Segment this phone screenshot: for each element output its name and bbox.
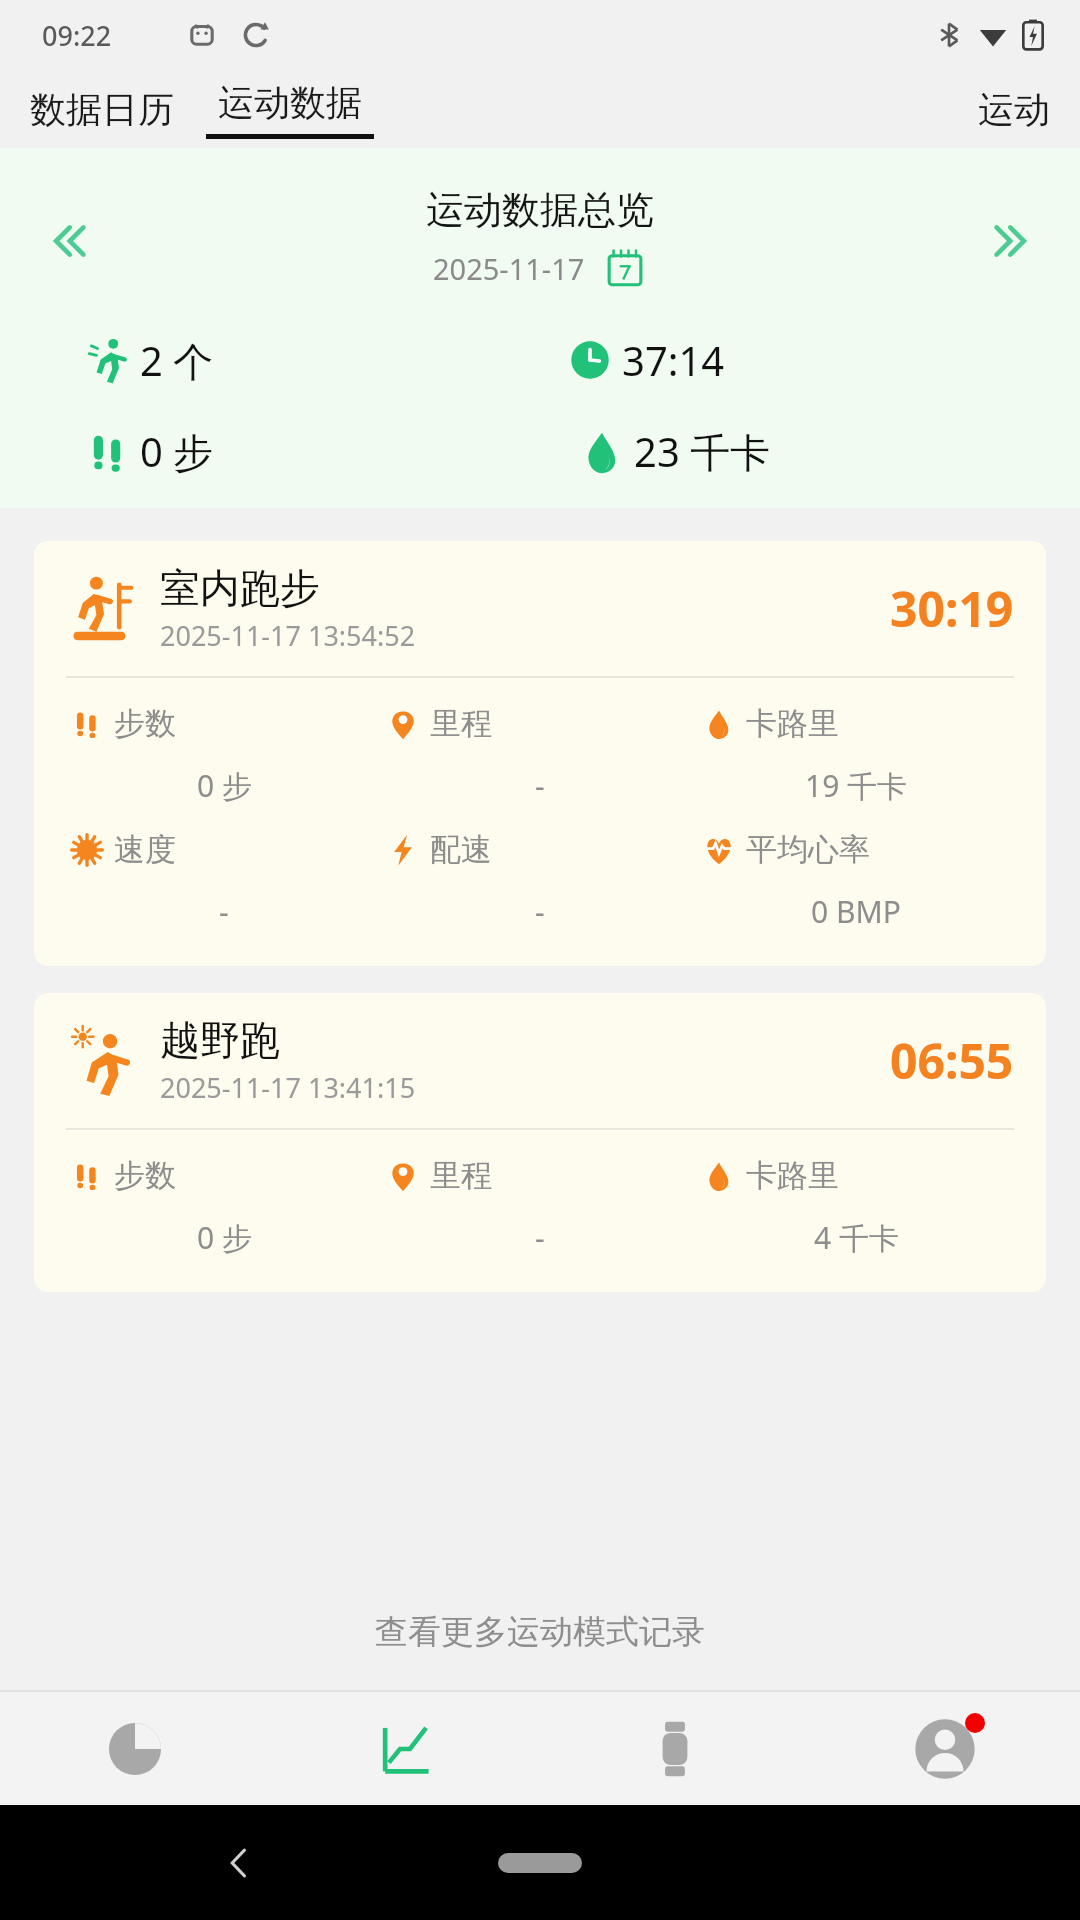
staticText: 越野跑	[160, 1015, 280, 1065]
staticText: 卡路里	[746, 704, 839, 743]
staticText: 速度	[114, 830, 176, 869]
staticText: -	[535, 1217, 545, 1258]
staticText: 室内跑步	[160, 563, 320, 613]
staticText: 0 步	[140, 424, 214, 479]
button[interactable]: 查看更多运动模式记录	[0, 1574, 1080, 1690]
staticText: 数据日历	[30, 87, 174, 132]
staticText: 09:22	[42, 17, 112, 54]
staticText: 2025-11-17 13:41:15	[160, 1069, 416, 1106]
staticText: 0 步	[197, 765, 252, 806]
button[interactable]: 室内跑步	[34, 541, 1046, 966]
staticText: -	[535, 891, 545, 932]
button[interactable]: Previous	[40, 210, 102, 272]
button[interactable]: 运动数据	[206, 80, 374, 139]
staticText: 里程	[430, 704, 492, 743]
staticText: 4 千卡	[814, 1217, 899, 1258]
staticText: 30:19	[890, 576, 1014, 641]
staticText: 步数	[114, 1156, 176, 1195]
staticText: 2025-11-17 13:54:52	[160, 617, 416, 654]
button[interactable]: Statistics	[363, 1707, 447, 1791]
staticText: 里程	[430, 1156, 492, 1195]
staticText: 06:55	[890, 1028, 1014, 1093]
staticText: -	[219, 891, 229, 932]
staticText: 23 千卡	[634, 424, 771, 479]
button[interactable]: Device	[633, 1707, 717, 1791]
button[interactable]: Overview	[93, 1707, 177, 1791]
staticText: -	[535, 765, 545, 806]
staticText: 2025-11-17	[433, 249, 585, 288]
button[interactable]: Profile	[903, 1707, 987, 1791]
button[interactable]: Pick date	[603, 246, 647, 290]
staticText: 0 步	[197, 1217, 252, 1258]
staticText: 运动数据总览	[426, 186, 654, 234]
staticText: 运动数据	[218, 80, 362, 125]
button[interactable]: Next	[978, 210, 1040, 272]
button[interactable]: 越野跑	[34, 993, 1046, 1292]
staticText: 配速	[430, 830, 492, 869]
staticText: 平均心率	[746, 830, 870, 869]
staticText: 0 BMP	[811, 891, 901, 932]
staticText: 查看更多运动模式记录	[375, 1611, 705, 1653]
staticText: 卡路里	[746, 1156, 839, 1195]
staticText: 19 千卡	[805, 765, 908, 806]
staticText: 运动	[978, 87, 1050, 132]
staticText: 步数	[114, 704, 176, 743]
staticText: 37:14	[622, 333, 725, 387]
button[interactable]: 运动	[970, 81, 1058, 138]
staticText: 2 个	[140, 333, 214, 388]
button[interactable]: 数据日历	[22, 81, 182, 138]
